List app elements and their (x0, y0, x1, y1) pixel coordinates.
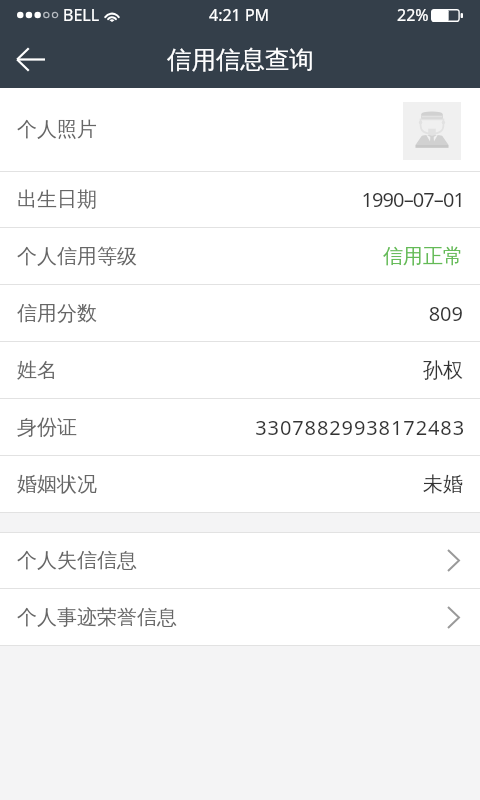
staticText: 未婚 (423, 472, 463, 497)
button[interactable]: 个人信用等级 (0, 228, 480, 284)
staticText: 22% (397, 4, 429, 26)
staticText: 个人事迹荣誉信息 (17, 605, 177, 630)
staticText: 出生日期 (17, 187, 97, 212)
staticText: 个人失信信息 (17, 548, 137, 573)
button[interactable]: 出生日期 (0, 172, 480, 227)
button[interactable]: Back (3, 32, 57, 86)
button[interactable]: 婚姻状况 (0, 456, 480, 512)
button[interactable]: 身份证 (0, 399, 480, 455)
staticText: 信用分数 (17, 301, 97, 326)
button[interactable]: 姓名 (0, 342, 480, 398)
staticText: 信用信息查询 (167, 44, 314, 75)
staticText: 婚姻状况 (17, 472, 97, 497)
staticText: 个人信用等级 (17, 244, 137, 269)
button[interactable]: 个人事迹荣誉信息 (0, 589, 480, 645)
staticText: 个人照片 (17, 117, 97, 142)
button[interactable]: 个人失信信息 (0, 533, 480, 588)
button[interactable]: 信用分数 (0, 285, 480, 341)
staticText: 孙权 (423, 358, 463, 383)
staticText: 身份证 (17, 415, 77, 440)
button[interactable]: 个人照片 (0, 88, 480, 171)
staticText: 1990–07–01 (361, 186, 464, 213)
staticText: 33078829938172483 (255, 414, 465, 441)
staticText: 姓名 (17, 358, 57, 383)
staticText: BELL (63, 4, 100, 26)
staticText: 4:21 PM (209, 4, 270, 26)
staticText: 809 (428, 300, 463, 327)
staticText: 信用正常 (383, 244, 463, 269)
